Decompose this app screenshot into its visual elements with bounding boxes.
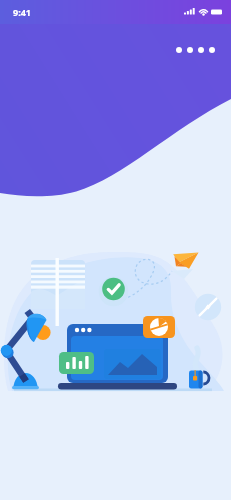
button[interactable]: Page indicator (176, 47, 220, 53)
staticText: 9:41 (13, 6, 31, 18)
